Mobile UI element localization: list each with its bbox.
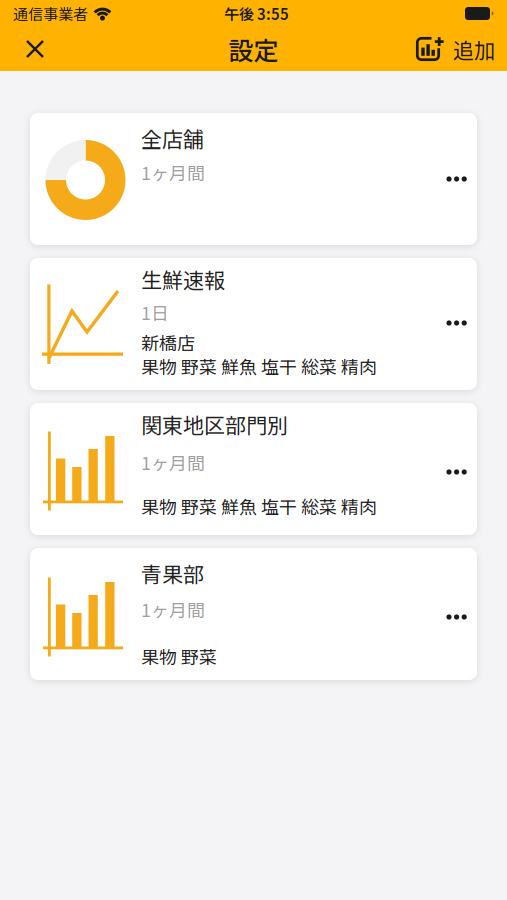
button[interactable]: その他 (438, 310, 473, 336)
button[interactable]: 全店舗 (30, 113, 477, 245)
staticText: 果物 野菜 鮮魚 塩干 総菜 精肉 (141, 493, 377, 519)
staticText: 1ヶ月間 (141, 596, 205, 622)
staticText: 関東地区部門別 (141, 409, 288, 439)
button[interactable]: 追加 (416, 34, 507, 64)
button[interactable]: その他 (438, 604, 473, 630)
staticText: 追加 (453, 34, 495, 64)
staticText: 果物 野菜 (141, 643, 217, 669)
button[interactable]: 生鮮速報 (30, 258, 477, 390)
button[interactable]: 閉じる (0, 40, 56, 58)
button[interactable]: 関東地区部門別 (30, 403, 477, 535)
button[interactable]: その他 (438, 459, 473, 485)
staticText: 青果部 (141, 558, 204, 588)
staticText: 設定 (228, 31, 278, 67)
staticText: 1日 (141, 299, 169, 325)
button[interactable]: その他 (438, 166, 473, 192)
staticText: 全店舗 (141, 123, 204, 153)
staticText: 通信事業者 (13, 3, 88, 24)
staticText: 1ヶ月間 (141, 159, 205, 185)
staticText: 1ヶ月間 (141, 449, 205, 475)
staticText: 生鮮速報 (141, 264, 225, 294)
staticText: 新橋店 (141, 329, 195, 355)
button[interactable]: 青果部 (30, 548, 477, 680)
staticText: 果物 野菜 鮮魚 塩干 総菜 精肉 (141, 353, 377, 379)
staticText: 午後 3:55 (224, 3, 289, 24)
